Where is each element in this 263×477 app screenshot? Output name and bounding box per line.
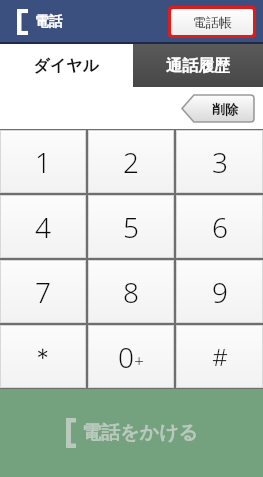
button[interactable]: 電話帳 — [171, 9, 253, 35]
staticText: 0 — [118, 338, 134, 376]
staticText: 削除 — [212, 101, 238, 117]
staticText: ＊ — [31, 342, 55, 372]
staticText: ダイヤル — [33, 56, 99, 76]
button[interactable]: 8 — [88, 260, 174, 323]
button[interactable]: 5 — [88, 195, 174, 258]
staticText: 1 — [35, 143, 51, 181]
staticText: 電話をかける — [82, 421, 198, 445]
button[interactable]: 6 — [176, 195, 263, 258]
button[interactable]: 0 — [88, 325, 174, 388]
staticText: 電話 — [35, 13, 63, 31]
staticText: 電話帳 — [193, 14, 232, 30]
staticText: + — [134, 349, 144, 372]
button[interactable]: ダイヤル — [0, 44, 131, 87]
staticText: 6 — [212, 208, 228, 246]
staticText: # — [212, 340, 228, 373]
button[interactable]: 削除 — [182, 95, 254, 122]
staticText: 7 — [35, 273, 51, 311]
staticText: 3 — [212, 143, 228, 181]
button[interactable]: 4 — [0, 195, 86, 258]
staticText: 5 — [123, 208, 139, 246]
button[interactable]: 3 — [176, 130, 263, 193]
button[interactable]: 電話をかける — [0, 389, 263, 477]
button[interactable]: 1 — [0, 130, 86, 193]
staticText: 2 — [123, 143, 139, 181]
staticText: 8 — [123, 273, 139, 311]
staticText: 9 — [212, 273, 228, 311]
button[interactable]: 2 — [88, 130, 174, 193]
button[interactable]: ＊ — [0, 325, 86, 388]
button[interactable]: 7 — [0, 260, 86, 323]
staticText: 通話履歴 — [166, 56, 230, 76]
staticText: 4 — [35, 208, 51, 246]
button[interactable]: # — [176, 325, 263, 388]
button[interactable]: 通話履歴 — [133, 44, 263, 87]
button[interactable]: 9 — [176, 260, 263, 323]
